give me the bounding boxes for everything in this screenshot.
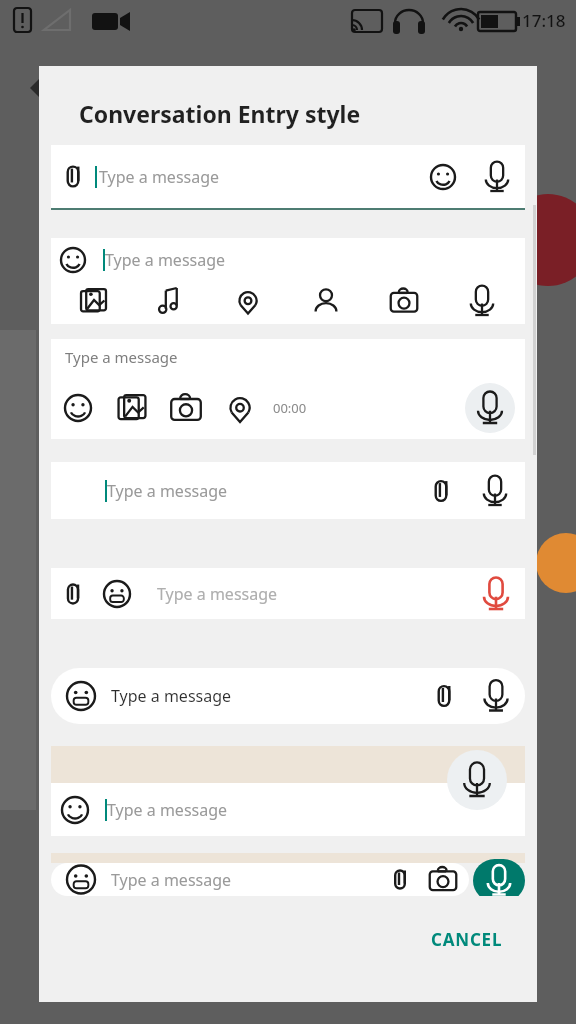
staticText: Type a message [107, 480, 228, 502]
button[interactable]: Location [209, 282, 287, 320]
button[interactable]: Gallery [105, 377, 159, 439]
button[interactable]: Emoji [59, 674, 103, 718]
button[interactable]: Gallery [55, 282, 132, 320]
button[interactable]: Attach [379, 863, 421, 896]
button[interactable]: Attach [51, 568, 525, 619]
button[interactable]: Attach [51, 145, 95, 208]
staticText: Type a message [99, 166, 220, 188]
staticText: Type a message [107, 799, 228, 821]
button[interactable]: Voice message [473, 673, 519, 719]
button[interactable]: Type a message [51, 462, 525, 519]
button[interactable]: Voice message [473, 859, 525, 902]
staticText: Type a message [65, 347, 178, 367]
button[interactable]: Voice message [475, 155, 519, 199]
button[interactable]: Location [213, 377, 267, 439]
button[interactable]: Emoji [59, 863, 103, 896]
button[interactable]: Attach [417, 467, 465, 515]
button[interactable]: Emoji [51, 783, 525, 836]
button[interactable]: Voice message [465, 383, 515, 433]
button[interactable]: Attach [51, 145, 525, 208]
staticText: Conversation Entry style [79, 98, 361, 129]
button[interactable]: Emoji [51, 238, 525, 324]
button[interactable]: Contact [287, 282, 365, 320]
button[interactable]: Voice message [473, 571, 519, 617]
button[interactable]: Voice [443, 282, 521, 320]
button[interactable]: Emoji [51, 786, 99, 834]
staticText: Type a message [111, 685, 232, 707]
button[interactable]: Type a message [51, 339, 525, 439]
button[interactable]: Camera [421, 863, 465, 896]
button[interactable]: Emoji [51, 377, 105, 439]
button[interactable]: Emoji [51, 238, 95, 282]
button[interactable]: Audio [132, 282, 209, 320]
button[interactable]: Emoji [51, 668, 525, 724]
button[interactable]: Voice message [471, 467, 519, 515]
button[interactable]: Attach [51, 572, 95, 616]
staticText: Type a message [105, 249, 226, 271]
button[interactable]: Attach [421, 673, 467, 719]
button[interactable]: Emoji [95, 572, 139, 616]
button[interactable]: CANCEL [421, 920, 513, 959]
button[interactable]: Emoji [51, 863, 469, 896]
staticText: 00:00 [273, 399, 307, 417]
staticText: 17:18 [522, 9, 566, 32]
button[interactable]: Voice message [447, 750, 507, 810]
button[interactable]: Emoji [421, 155, 465, 199]
staticText: Type a message [157, 583, 278, 605]
staticText: CANCEL [431, 928, 503, 951]
button[interactable]: Camera [365, 282, 443, 320]
button[interactable]: Camera [159, 377, 213, 439]
staticText: Type a message [111, 869, 232, 891]
